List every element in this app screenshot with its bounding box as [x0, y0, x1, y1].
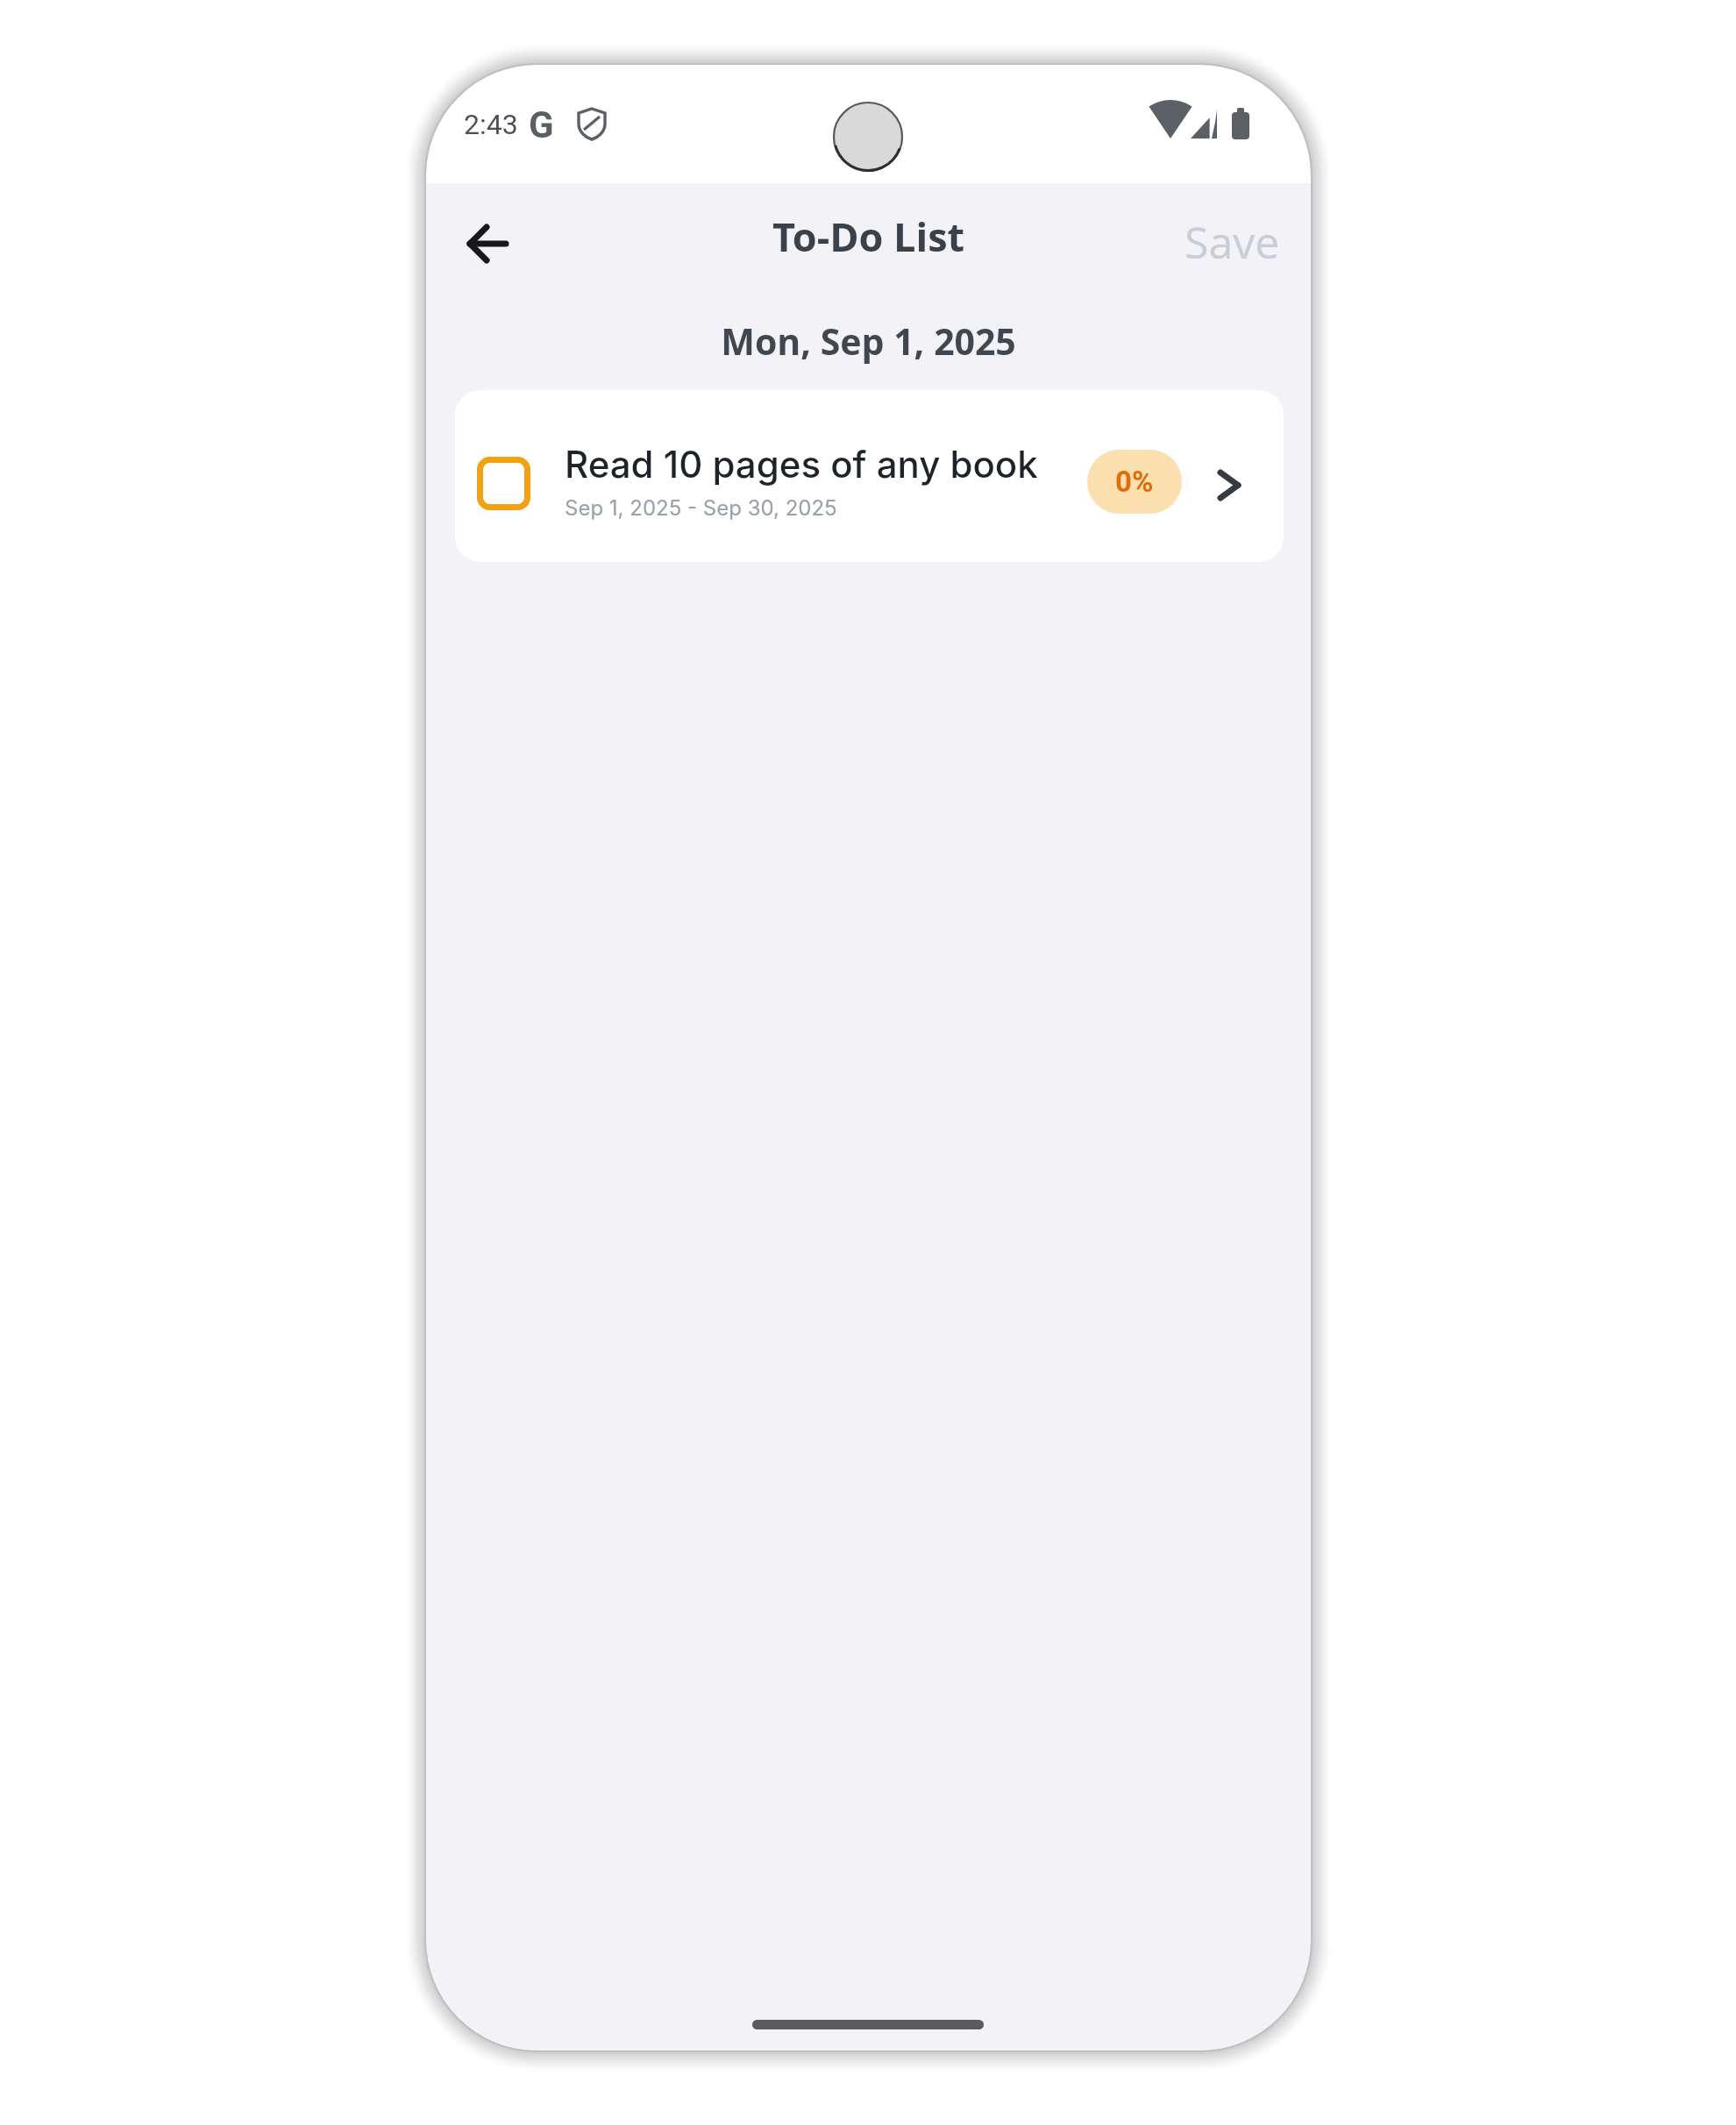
staticText: Mon, Sep 1, 2025 [426, 316, 1311, 366]
staticText: Read 10 pages of any book [565, 442, 1038, 487]
staticText: Sep 1, 2025 - Sep 30, 2025 [565, 495, 837, 521]
staticText: G [529, 103, 554, 146]
button[interactable]: Read 10 pages of any book [455, 390, 1284, 562]
button[interactable] [452, 210, 523, 277]
staticText: To-Do List [426, 210, 1311, 263]
staticText: 0% [1115, 465, 1154, 499]
staticText: 2:43 [464, 108, 518, 141]
button[interactable]: Save [1170, 210, 1280, 274]
staticText: Save [1185, 212, 1280, 272]
button[interactable] [466, 446, 541, 521]
